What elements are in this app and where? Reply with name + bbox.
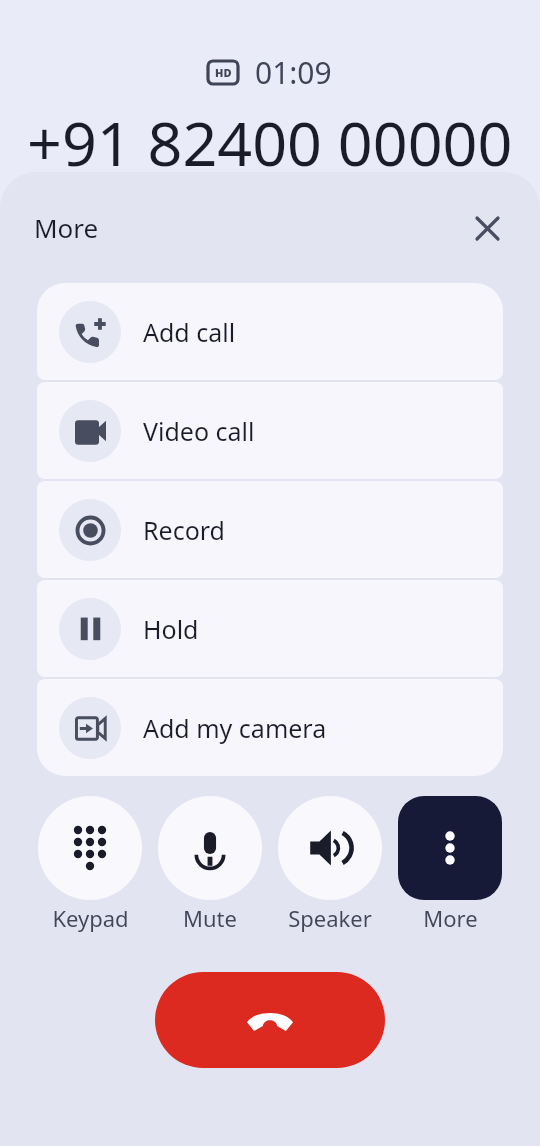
button[interactable]: Speaker <box>270 796 390 933</box>
button[interactable]: Add my camera <box>37 679 503 776</box>
button[interactable]: Close <box>463 204 511 252</box>
staticText: More <box>34 210 99 245</box>
staticText: Add call <box>143 315 236 349</box>
button[interactable]: Hold <box>37 580 503 677</box>
button[interactable]: Keypad <box>30 796 150 933</box>
button[interactable]: Video call <box>37 382 503 479</box>
button[interactable]: Add call <box>37 283 503 380</box>
staticText: More <box>423 903 478 933</box>
staticText: +91 82400 00000 <box>27 101 513 184</box>
staticText: Add my camera <box>143 711 327 745</box>
button[interactable]: Mute <box>150 796 270 933</box>
staticText: Video call <box>143 414 255 448</box>
button[interactable]: Record <box>37 481 503 578</box>
staticText: Keypad <box>52 903 129 933</box>
staticText: Speaker <box>288 903 372 933</box>
button[interactable]: More <box>390 796 510 933</box>
staticText: Record <box>143 513 225 547</box>
staticText: Mute <box>183 903 237 933</box>
button[interactable]: End call <box>155 972 385 1068</box>
staticText: 01:09 <box>255 52 332 93</box>
staticText: Hold <box>143 612 199 646</box>
staticText: HD <box>215 65 232 80</box>
